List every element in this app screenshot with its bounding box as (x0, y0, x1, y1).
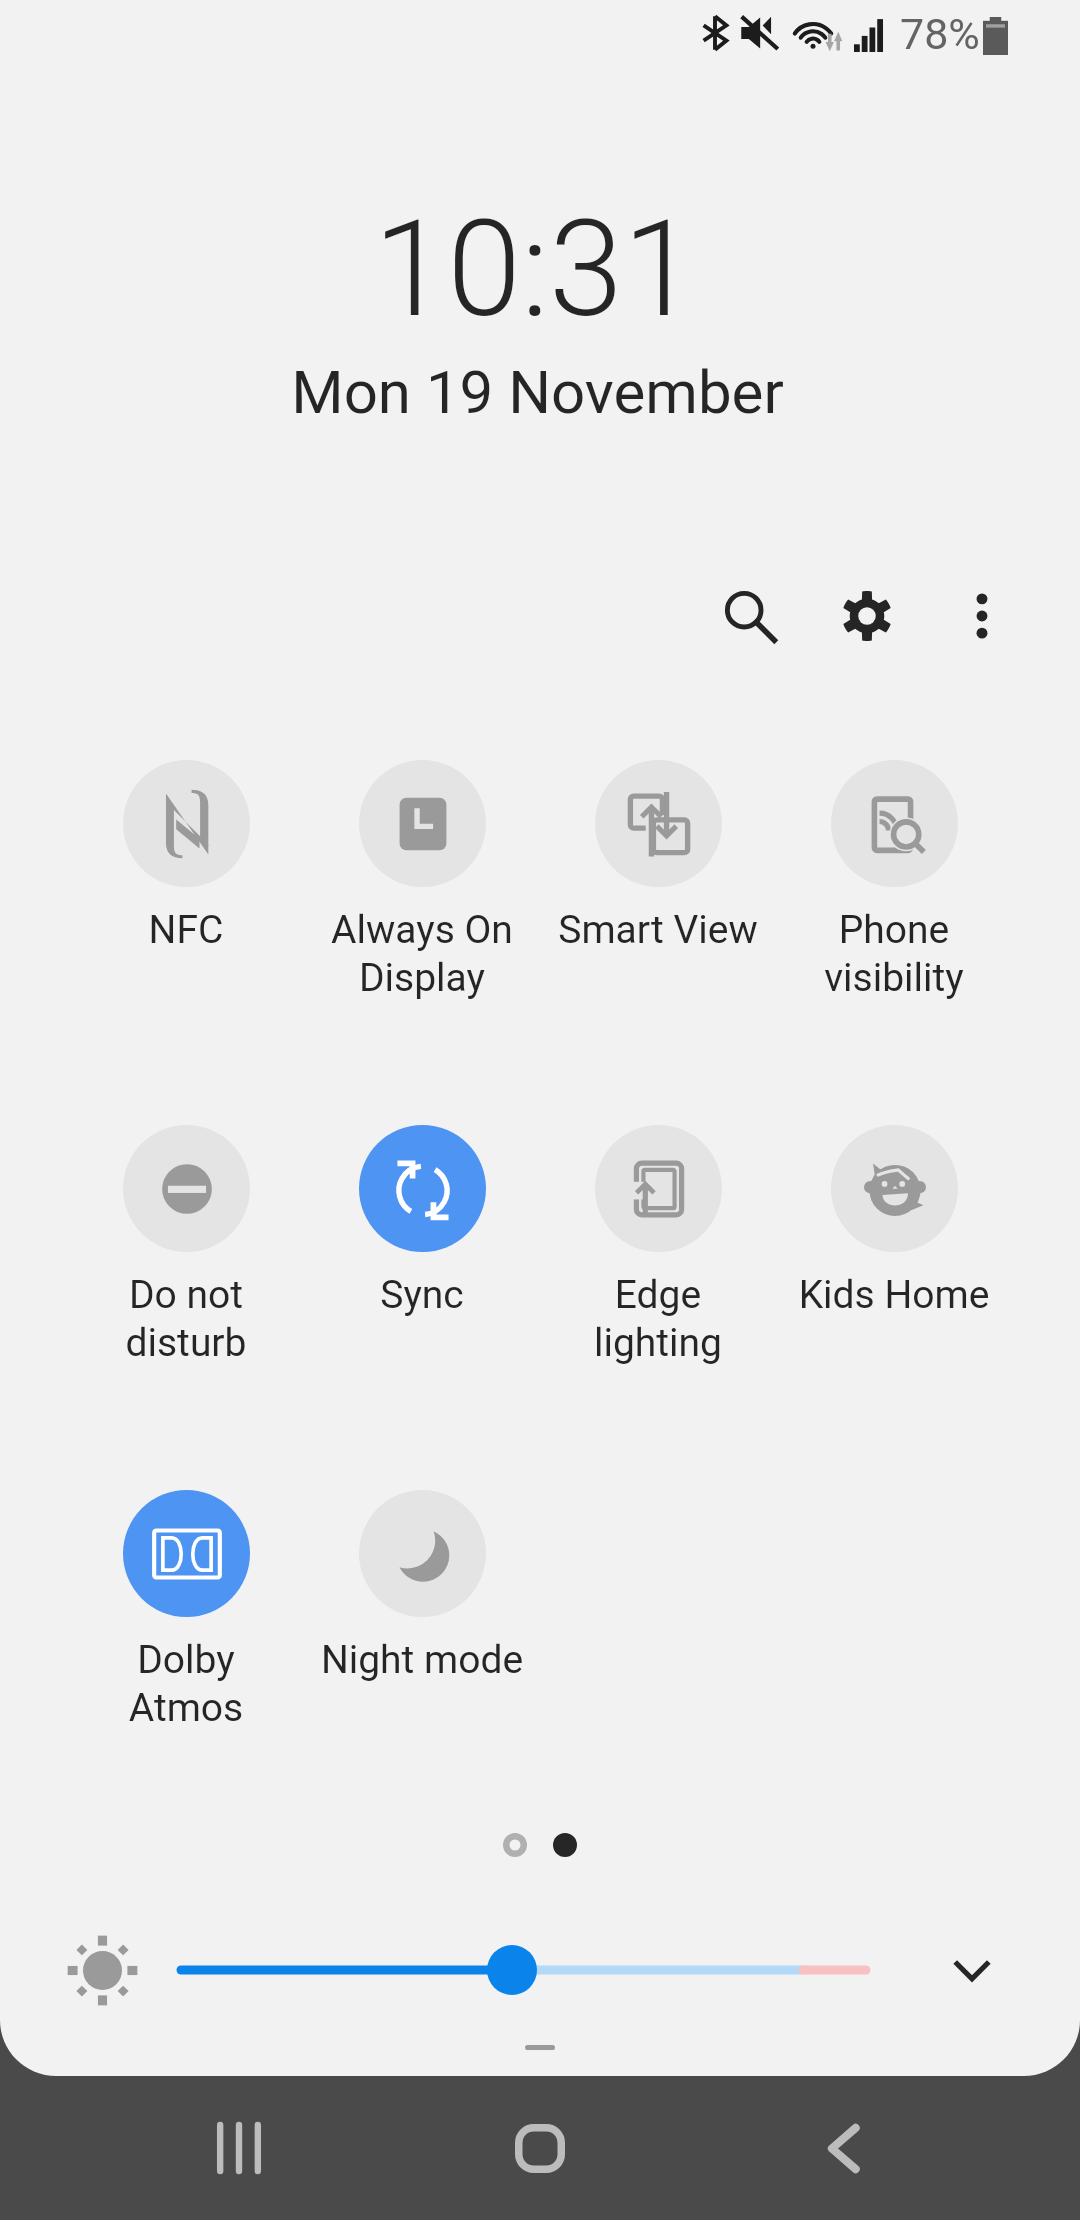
staticText: Sync (304, 1272, 540, 1318)
staticText: Edge lighting (540, 1272, 776, 1366)
button[interactable]: Do not disturb (68, 1125, 304, 1366)
staticText: Do not disturb (68, 1272, 304, 1366)
staticText: NFC (68, 907, 304, 953)
button[interactable]: Night mode (304, 1490, 540, 1683)
button[interactable]: Adaptive brightness (46, 1925, 158, 2015)
button[interactable]: Settings (811, 560, 923, 672)
staticText: Mon 19 November (291, 357, 784, 427)
staticText: Night mode (304, 1637, 540, 1683)
staticText: Kids Home (776, 1272, 1012, 1318)
button[interactable]: Edge lighting (540, 1125, 776, 1366)
button[interactable]: Brightness (155, 1925, 895, 2015)
staticText: 78% (900, 9, 980, 59)
button[interactable]: Sync (304, 1125, 540, 1318)
button[interactable]: Phone visibility (776, 760, 1012, 1001)
staticText: 10:31 (373, 192, 697, 348)
staticText: Dolby Atmos (68, 1637, 304, 1731)
button[interactable]: Kids Home (776, 1125, 1012, 1318)
staticText: Smart View (540, 907, 776, 953)
button[interactable]: Home (468, 2076, 612, 2220)
button[interactable]: Dolby Atmos (68, 1490, 304, 1731)
button[interactable]: More options (926, 560, 1038, 672)
button[interactable]: Expand (932, 1930, 1012, 2010)
button[interactable]: NFC (68, 760, 304, 953)
button[interactable]: Always On Display (304, 760, 540, 1001)
staticText: Always On Display (304, 907, 540, 1001)
button[interactable]: Recents (167, 2076, 311, 2220)
button[interactable]: Search (694, 560, 806, 672)
button[interactable]: Back (771, 2076, 915, 2220)
button[interactable]: Smart View (540, 760, 776, 953)
staticText: Phone visibility (776, 907, 1012, 1001)
